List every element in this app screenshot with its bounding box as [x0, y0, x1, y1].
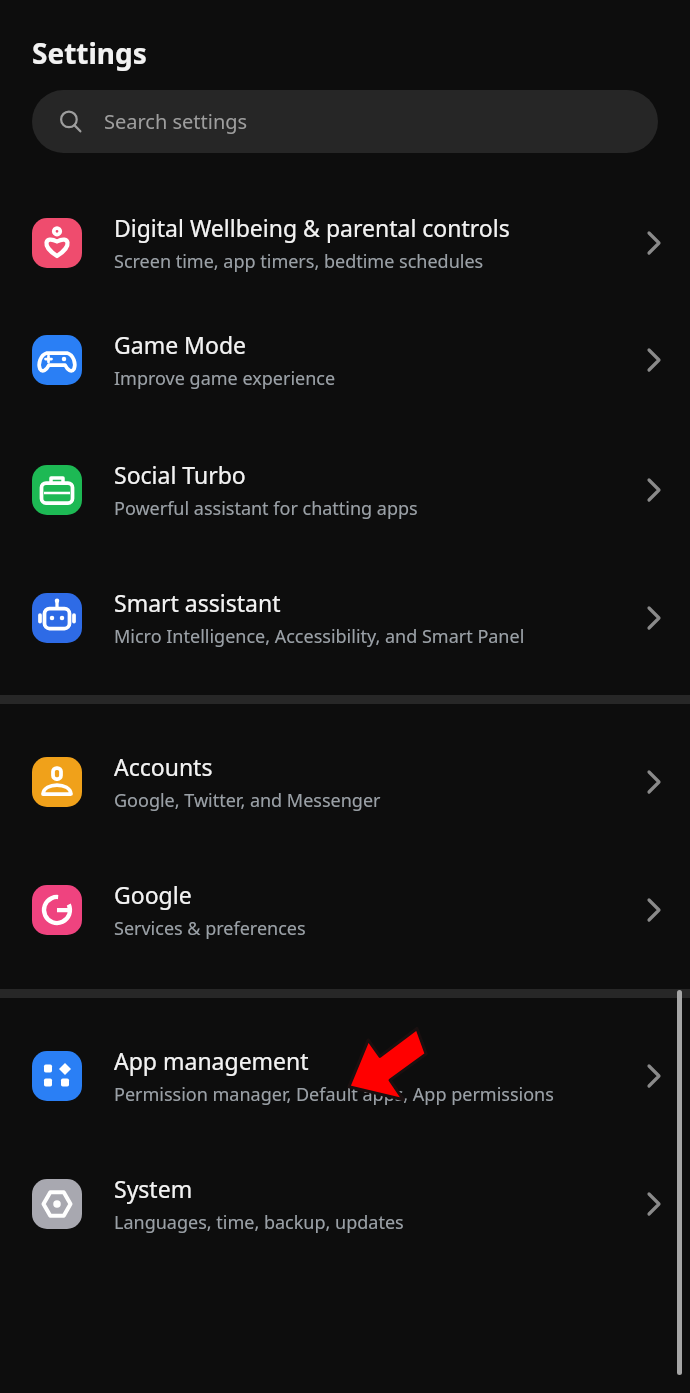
staticText: Languages, time, backup, updates	[114, 1210, 404, 1235]
staticText: Micro Intelligence, Accessibility, and S…	[114, 624, 525, 649]
button[interactable]: App management	[0, 1012, 690, 1140]
staticText: Digital Wellbeing & parental controls	[114, 212, 510, 243]
button[interactable]: Digital Wellbeing & parental controls	[0, 191, 690, 295]
button[interactable]: Accounts	[0, 718, 690, 845]
staticText: Social Turbo	[114, 459, 246, 490]
staticText: Search settings	[104, 108, 248, 135]
staticText: Permission manager, Default apps, App pe…	[114, 1082, 554, 1107]
staticText: Screen time, app timers, bedtime schedul…	[114, 249, 484, 274]
staticText: System	[114, 1173, 193, 1204]
button[interactable]: Google	[0, 845, 690, 975]
staticText: App management	[114, 1045, 309, 1076]
button[interactable]: Social Turbo	[0, 425, 690, 555]
staticText: Powerful assistant for chatting apps	[114, 496, 418, 521]
staticText: Google, Twitter, and Messenger	[114, 788, 381, 813]
button[interactable]: Search settings	[32, 90, 658, 153]
staticText: Improve game experience	[114, 366, 336, 391]
staticText: Game Mode	[114, 329, 246, 360]
staticText: Smart assistant	[114, 587, 281, 618]
staticText: Accounts	[114, 751, 213, 782]
staticText: Settings	[32, 34, 147, 72]
button[interactable]: System	[0, 1140, 690, 1268]
staticText: Services & preferences	[114, 916, 306, 941]
button[interactable]: Smart assistant	[0, 555, 690, 681]
button[interactable]: Game Mode	[0, 295, 690, 425]
staticText: Google	[114, 879, 192, 910]
